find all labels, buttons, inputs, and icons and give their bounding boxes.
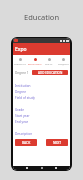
button[interactable]: Start year [13,113,70,119]
button[interactable]: Institution [13,83,70,89]
button[interactable]: Degree [13,89,70,95]
staticText: BACK [22,141,31,145]
button[interactable]: Description [13,131,70,137]
staticText: Description [15,132,33,136]
button[interactable]: BACK [15,139,37,146]
button[interactable]: PROJECTS [56,55,70,68]
staticText: Expo [15,46,27,53]
staticText: NEXT [53,141,61,145]
staticText: Start year [15,114,30,118]
button[interactable]: NEXT [46,139,68,146]
staticText: PROJECTS [58,62,69,65]
staticText: Degree [15,90,26,94]
staticText: Degree 1 [15,71,29,75]
staticText: EDUCATION [28,62,42,65]
button[interactable]: PERSONAL [13,55,28,68]
button[interactable]: End year [13,119,70,125]
button[interactable]: ADD EDUCATION [32,70,68,75]
staticText: SKILLS [45,62,53,65]
staticText: End year [15,120,29,124]
button[interactable]: Field of study [13,95,70,101]
staticText: PERSONAL [14,62,27,65]
button[interactable]: Grade [13,107,70,113]
staticText: Institution [15,84,31,88]
button[interactable]: SKILLS [42,55,56,68]
staticText: Grade [15,108,25,112]
staticText: Education [0,12,83,22]
staticText: Field of study [15,96,35,100]
staticText: ADD EDUCATION [38,71,63,75]
button[interactable]: EDUCATION [28,55,42,68]
